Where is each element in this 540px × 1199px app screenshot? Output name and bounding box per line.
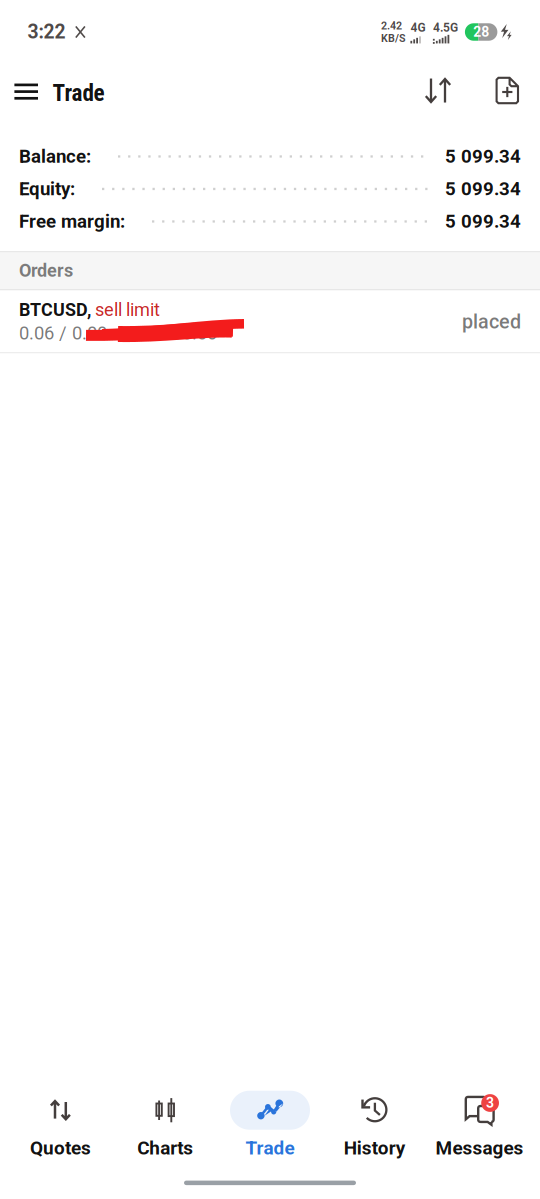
staticText: 5 099.34 [445,178,521,200]
staticText: 4.5G [433,21,458,35]
button[interactable]: History [322,1089,427,1159]
button[interactable]: Quotes [8,1089,113,1159]
staticText: placed [462,310,521,333]
button[interactable]: BTCUSD, [0,290,540,353]
staticText: Charts [137,1137,193,1159]
staticText: 28 [473,24,489,40]
staticText: 3 [486,1095,494,1111]
staticText: KB/S [381,32,406,44]
button[interactable]: Menu [0,64,52,122]
staticText: 5 099.34 [445,145,521,167]
staticText: Messages [436,1137,524,1159]
staticText: 0.06 / 0.00 1.75 00.00 [19,322,217,344]
staticText: 3:22 [27,21,65,43]
staticText: 2.42 [381,19,402,32]
button[interactable]: New order [478,64,537,122]
staticText: Balance: [19,145,91,167]
button[interactable]: 3 [427,1089,532,1159]
staticText: History [344,1137,406,1159]
staticText: 4G [410,21,425,35]
staticText: 5 099.34 [445,210,521,232]
staticText: BTCUSD, [19,299,91,320]
button[interactable]: Sort orders [398,64,478,122]
staticText: Trade [245,1137,294,1159]
staticText: Orders [19,260,73,281]
staticText: sell limit [91,299,160,320]
button[interactable]: Trade [218,1089,322,1159]
staticText: Quotes [30,1137,91,1159]
button[interactable]: Charts [113,1089,218,1159]
staticText: Free margin: [19,210,125,232]
staticText: Equity: [19,178,75,200]
staticText: Trade [52,79,104,107]
